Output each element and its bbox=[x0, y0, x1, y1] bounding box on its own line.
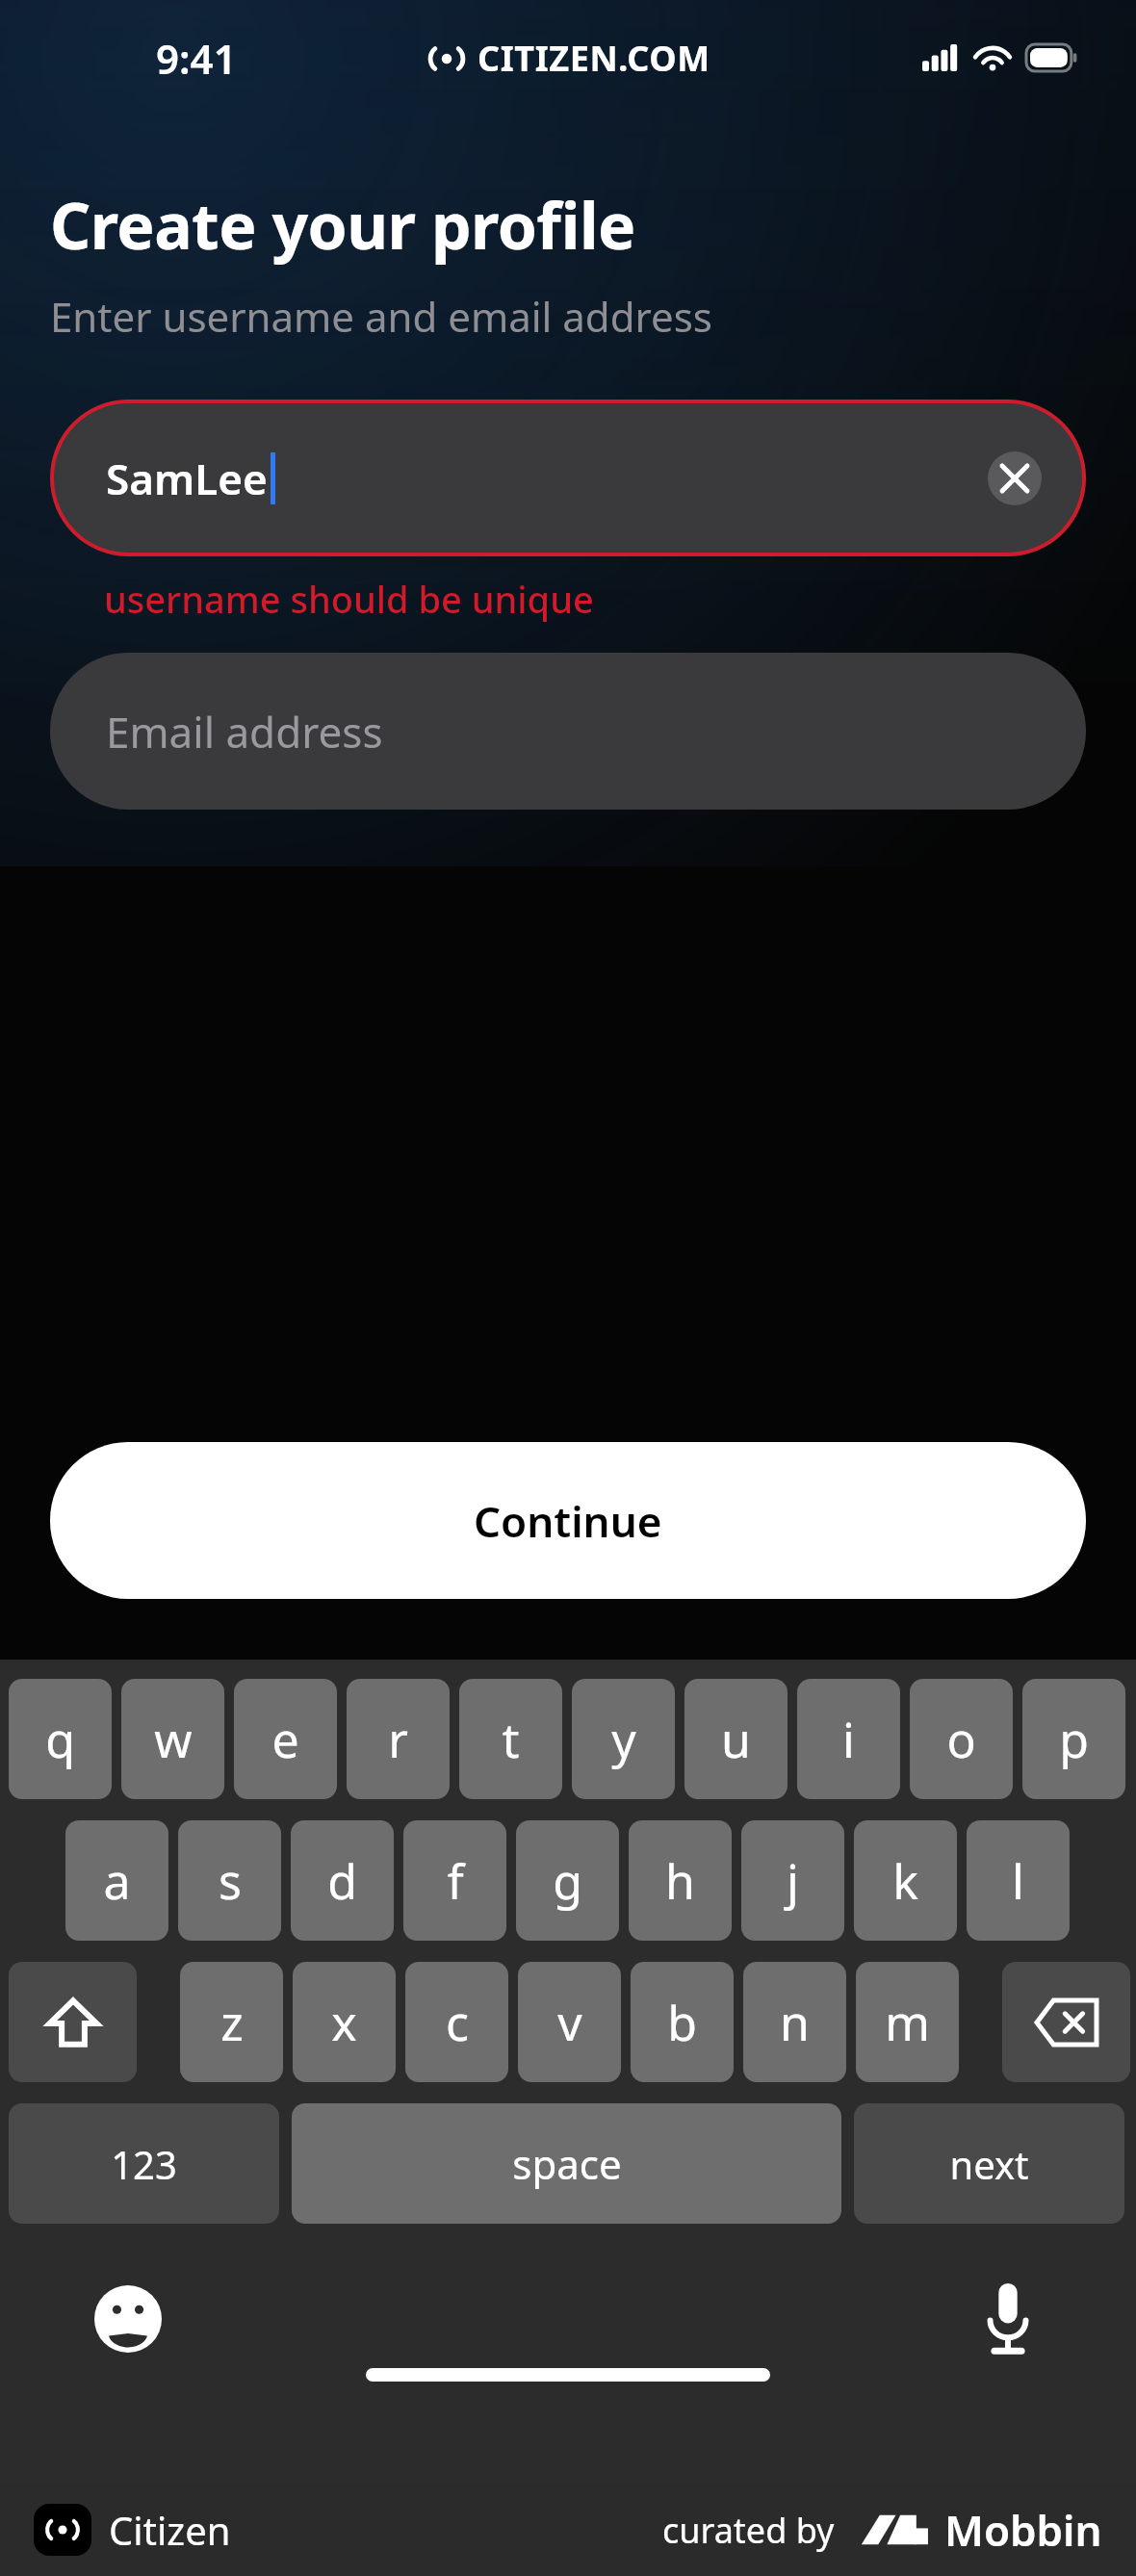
button[interactable]: q bbox=[9, 1679, 112, 1799]
button[interactable]: c bbox=[405, 1962, 508, 2082]
button[interactable]: p bbox=[1022, 1679, 1125, 1799]
button[interactable]: n bbox=[743, 1962, 846, 2082]
button[interactable]: k bbox=[854, 1820, 957, 1941]
staticText: d bbox=[327, 1848, 357, 1914]
staticText: b bbox=[667, 1990, 697, 2055]
button[interactable]: Continue bbox=[50, 1442, 1086, 1599]
button[interactable]: 123 bbox=[9, 2103, 279, 2224]
staticText: f bbox=[447, 1848, 464, 1914]
button[interactable]: f bbox=[403, 1820, 506, 1941]
button[interactable]: s bbox=[178, 1820, 281, 1941]
staticText: h bbox=[665, 1848, 695, 1914]
staticText: p bbox=[1059, 1707, 1089, 1772]
button[interactable]: Dictation bbox=[972, 2283, 1044, 2355]
staticText: o bbox=[946, 1707, 976, 1772]
button[interactable]: o bbox=[910, 1679, 1013, 1799]
staticText: a bbox=[103, 1848, 131, 1914]
button[interactable]: b bbox=[631, 1962, 734, 2082]
button[interactable]: space bbox=[292, 2103, 841, 2224]
staticText: z bbox=[220, 1990, 244, 2055]
staticText: s bbox=[219, 1848, 242, 1914]
button[interactable]: w bbox=[121, 1679, 224, 1799]
staticText: Create your profile bbox=[50, 181, 635, 268]
staticText: Citizen bbox=[109, 2504, 231, 2556]
staticText: Enter username and email address bbox=[50, 289, 712, 344]
staticText: l bbox=[1012, 1848, 1024, 1914]
staticText: r bbox=[388, 1707, 408, 1772]
staticText: 9:41 bbox=[156, 31, 237, 86]
button[interactable]: j bbox=[741, 1820, 844, 1941]
staticText: m bbox=[885, 1990, 930, 2055]
button[interactable]: t bbox=[459, 1679, 562, 1799]
button[interactable]: d bbox=[291, 1820, 394, 1941]
staticText: i bbox=[842, 1707, 855, 1772]
staticText: u bbox=[721, 1707, 751, 1772]
button[interactable]: SamLee bbox=[50, 399, 1086, 556]
button[interactable]: e bbox=[234, 1679, 337, 1799]
staticText: CITIZEN.COM bbox=[478, 35, 710, 82]
staticText: q bbox=[45, 1707, 75, 1772]
staticText: k bbox=[892, 1848, 918, 1914]
staticText: c bbox=[446, 1990, 469, 2055]
staticText: n bbox=[780, 1990, 810, 2055]
staticText: next bbox=[949, 2138, 1029, 2190]
button[interactable]: z bbox=[180, 1962, 283, 2082]
staticText: Email address bbox=[106, 703, 383, 760]
staticText: username should be unique bbox=[104, 574, 594, 624]
button[interactable]: Backspace bbox=[1002, 1962, 1130, 2082]
staticText: x bbox=[331, 1990, 357, 2055]
button[interactable]: i bbox=[797, 1679, 900, 1799]
staticText: curated by bbox=[662, 2507, 835, 2554]
staticText: j bbox=[787, 1848, 799, 1914]
button[interactable]: Emoji keyboard bbox=[92, 2283, 164, 2355]
staticText: y bbox=[611, 1707, 636, 1772]
staticText: space bbox=[512, 2136, 622, 2191]
staticText: e bbox=[271, 1707, 299, 1772]
staticText: g bbox=[553, 1848, 582, 1914]
staticText: Continue bbox=[474, 1492, 662, 1550]
button[interactable]: Clear username bbox=[988, 451, 1042, 505]
staticText: w bbox=[154, 1707, 193, 1772]
button[interactable]: x bbox=[293, 1962, 396, 2082]
button[interactable]: Shift bbox=[9, 1962, 137, 2082]
button[interactable]: l bbox=[967, 1820, 1070, 1941]
staticText: Mobbin bbox=[944, 2501, 1102, 2559]
button[interactable]: a bbox=[65, 1820, 168, 1941]
button[interactable]: m bbox=[856, 1962, 959, 2082]
staticText: 123 bbox=[111, 2138, 177, 2190]
staticText: t bbox=[502, 1707, 520, 1772]
button[interactable]: v bbox=[518, 1962, 621, 2082]
button[interactable]: y bbox=[572, 1679, 675, 1799]
button[interactable]: g bbox=[516, 1820, 619, 1941]
button[interactable]: Email address bbox=[50, 653, 1086, 810]
staticText: SamLee bbox=[106, 450, 268, 507]
button[interactable]: u bbox=[684, 1679, 787, 1799]
button[interactable]: next bbox=[854, 2103, 1124, 2224]
button[interactable]: r bbox=[347, 1679, 450, 1799]
button[interactable]: h bbox=[629, 1820, 732, 1941]
staticText: v bbox=[557, 1990, 582, 2055]
